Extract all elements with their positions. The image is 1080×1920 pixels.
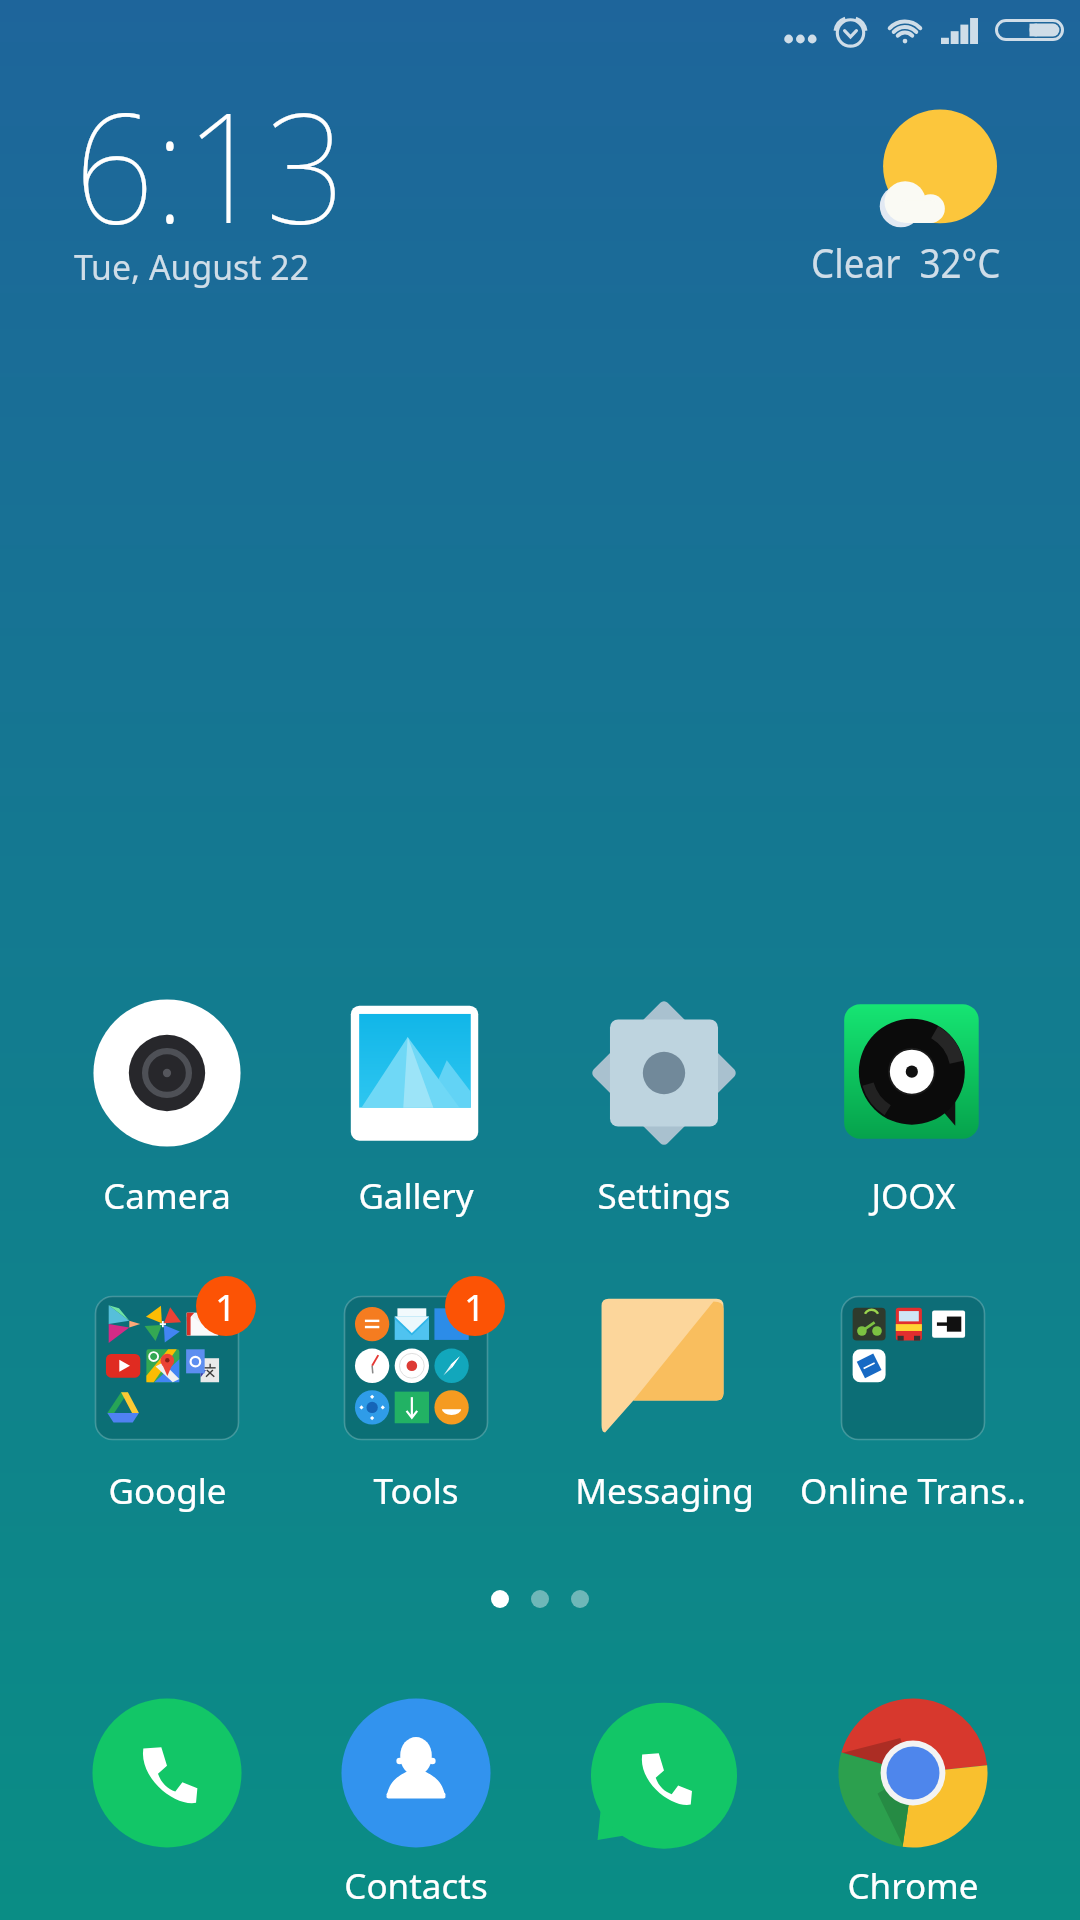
staticText: JOOX — [871, 1172, 956, 1220]
staticText: Chrome — [847, 1862, 979, 1910]
button[interactable]: Camera — [47, 984, 287, 1220]
staticText: 6:13 — [74, 61, 346, 268]
staticText: 1 — [215, 1281, 237, 1331]
staticText: Tue, August 22 — [74, 243, 310, 291]
button[interactable]: Gallery — [296, 984, 536, 1220]
button[interactable]: Chrome — [793, 1684, 1033, 1910]
staticText: Camera — [103, 1172, 231, 1220]
button[interactable]: Weather widget, Clear 32 degrees — [786, 96, 1022, 296]
button[interactable]: Settings — [544, 984, 784, 1220]
button[interactable]: Phone — [47, 1684, 287, 1862]
staticText: 1 — [464, 1281, 486, 1331]
staticText: Gallery — [358, 1172, 474, 1220]
button[interactable]: Clock widget — [74, 36, 374, 296]
button[interactable]: 1 — [296, 1279, 536, 1515]
button[interactable]: Messaging — [544, 1279, 784, 1515]
button[interactable]: Online Trans.. — [793, 1279, 1033, 1515]
staticText: Online Trans.. — [800, 1467, 1026, 1515]
button[interactable]: JOOX — [793, 984, 1033, 1220]
staticText: Tools — [373, 1467, 459, 1515]
button[interactable]: WhatsApp — [544, 1684, 784, 1862]
button[interactable]: 1 — [47, 1279, 287, 1515]
staticText: Settings — [597, 1172, 731, 1220]
staticText: Messaging — [575, 1467, 754, 1515]
staticText: Clear 32°C — [811, 235, 1001, 289]
button[interactable]: Page 1 of 3 — [491, 1578, 589, 1620]
button[interactable]: Contacts — [296, 1684, 536, 1910]
staticText: Contacts — [344, 1862, 488, 1910]
staticText: Google — [108, 1467, 227, 1515]
